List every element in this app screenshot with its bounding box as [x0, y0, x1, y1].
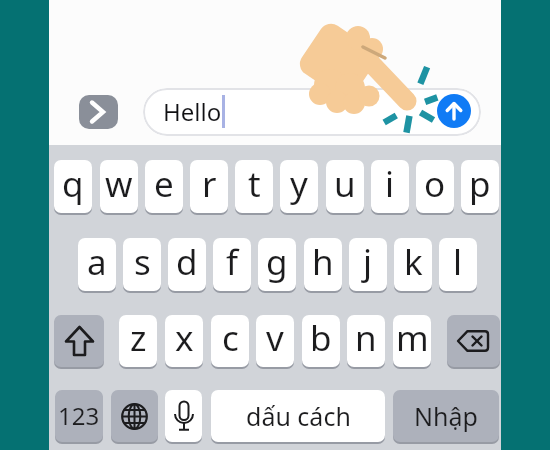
- staticText: z: [130, 315, 147, 362]
- button[interactable]: [437, 94, 471, 128]
- button[interactable]: x: [165, 315, 203, 367]
- staticText: o: [424, 160, 446, 208]
- button[interactable]: b: [302, 315, 340, 367]
- staticText: g: [266, 238, 288, 286]
- button[interactable]: q: [54, 160, 92, 213]
- staticText: dấu cách: [246, 399, 351, 433]
- staticText: h: [312, 238, 334, 286]
- button[interactable]: g: [258, 238, 296, 291]
- button[interactable]: [79, 95, 118, 129]
- staticText: s: [134, 238, 151, 286]
- staticText: j: [363, 238, 373, 286]
- staticText: d: [176, 238, 198, 286]
- staticText: q: [62, 160, 84, 208]
- button[interactable]: j: [349, 238, 387, 291]
- button[interactable]: y: [280, 160, 318, 213]
- button[interactable]: [54, 315, 104, 367]
- button[interactable]: a: [78, 238, 116, 291]
- button[interactable]: n: [347, 315, 385, 367]
- button[interactable]: [111, 390, 158, 442]
- button[interactable]: z: [119, 315, 157, 367]
- button[interactable]: p: [461, 160, 499, 213]
- staticText: Nhập: [414, 399, 478, 433]
- button[interactable]: h: [304, 238, 342, 291]
- button[interactable]: [165, 390, 202, 442]
- staticText: f: [226, 238, 239, 286]
- staticText: c: [222, 315, 239, 362]
- button[interactable]: s: [123, 238, 161, 291]
- button[interactable]: t: [235, 160, 273, 213]
- button[interactable]: w: [100, 160, 138, 213]
- button[interactable]: e: [145, 160, 183, 213]
- staticText: x: [175, 315, 194, 362]
- staticText: l: [453, 238, 463, 286]
- staticText: e: [154, 160, 174, 208]
- button[interactable]: m: [393, 315, 431, 367]
- button[interactable]: f: [213, 238, 251, 291]
- button[interactable]: l: [439, 238, 477, 291]
- staticText: m: [396, 315, 429, 362]
- staticText: t: [248, 160, 261, 208]
- button[interactable]: d: [168, 238, 206, 291]
- button[interactable]: i: [371, 160, 409, 213]
- staticText: u: [334, 160, 356, 208]
- button[interactable]: [447, 315, 500, 367]
- staticText: k: [404, 238, 423, 286]
- button[interactable]: Hello: [143, 88, 481, 136]
- button[interactable]: v: [256, 315, 294, 367]
- button[interactable]: u: [326, 160, 364, 213]
- staticText: p: [469, 160, 491, 208]
- staticText: n: [355, 315, 377, 362]
- button[interactable]: Nhập: [393, 390, 499, 442]
- button[interactable]: r: [190, 160, 228, 213]
- button[interactable]: k: [394, 238, 432, 291]
- staticText: y: [290, 160, 308, 208]
- staticText: w: [105, 160, 133, 208]
- button[interactable]: dấu cách: [211, 390, 385, 442]
- staticText: i: [385, 160, 395, 208]
- staticText: r: [202, 160, 217, 208]
- staticText: v: [266, 315, 284, 362]
- staticText: b: [310, 315, 332, 362]
- button[interactable]: 123: [55, 390, 103, 442]
- staticText: a: [87, 238, 107, 286]
- button[interactable]: o: [416, 160, 454, 213]
- staticText: Hello: [163, 95, 222, 128]
- staticText: 123: [58, 399, 100, 432]
- button[interactable]: c: [211, 315, 249, 367]
